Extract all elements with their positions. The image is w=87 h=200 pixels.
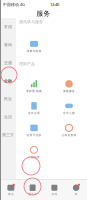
button[interactable]: 通讯录 [22, 179, 44, 200]
button[interactable]: 保险服务 [51, 75, 86, 97]
staticText: 交通 [4, 60, 12, 65]
staticText: 微信 [8, 192, 14, 196]
staticText: 查询 [4, 42, 12, 47]
button[interactable]: 生活 [0, 108, 16, 126]
staticText: 通讯录 [28, 192, 37, 196]
staticText: 第三方 [2, 132, 14, 137]
button[interactable]: 第三方 [0, 126, 16, 144]
staticText: 信用卡还款 [26, 133, 41, 137]
button[interactable]: 我 [65, 179, 87, 200]
button[interactable]: 人脸核身 [16, 141, 51, 163]
button[interactable]: 民生 [0, 90, 16, 108]
staticText: 理财产品 [19, 61, 35, 66]
button[interactable]: 理财通·稳健 [16, 75, 51, 97]
button[interactable]: 查询 [0, 36, 16, 54]
button[interactable]: 公积金查询 [51, 119, 86, 141]
button[interactable]: 交通 [0, 54, 16, 72]
staticText: 中国移动 4G [3, 2, 25, 7]
staticText: 消费与取现 [26, 49, 41, 53]
staticText: 发现 [51, 192, 57, 196]
staticText: 空中入网 [63, 111, 75, 115]
staticText: 服务 [36, 9, 50, 18]
staticText: 12:40 [50, 2, 59, 7]
button[interactable]: 空中入网 [51, 97, 86, 119]
button[interactable]: 证件办理 [16, 97, 51, 119]
staticText: 我 [75, 192, 78, 196]
staticText: 常用 [4, 24, 12, 29]
staticText: 理财通·稳健 [26, 89, 42, 93]
button[interactable]: 微信 [0, 179, 22, 200]
staticText: 通讯录与服务 [19, 19, 43, 24]
staticText: 民生 [4, 96, 12, 101]
staticText: 公积金查询 [61, 133, 76, 137]
button[interactable]: 常用 [0, 18, 16, 36]
button[interactable]: 发现 [43, 179, 65, 200]
staticText: 金融 [4, 78, 12, 83]
button[interactable]: 消费与取现 [16, 35, 51, 57]
button[interactable]: 金融 [0, 72, 16, 90]
staticText: 保险服务 [63, 89, 75, 93]
staticText: 证件办理 [28, 111, 40, 115]
staticText: 人脸核身 [28, 155, 40, 159]
staticText: 生活 [4, 114, 12, 119]
button[interactable]: 信用卡还款 [16, 119, 51, 141]
